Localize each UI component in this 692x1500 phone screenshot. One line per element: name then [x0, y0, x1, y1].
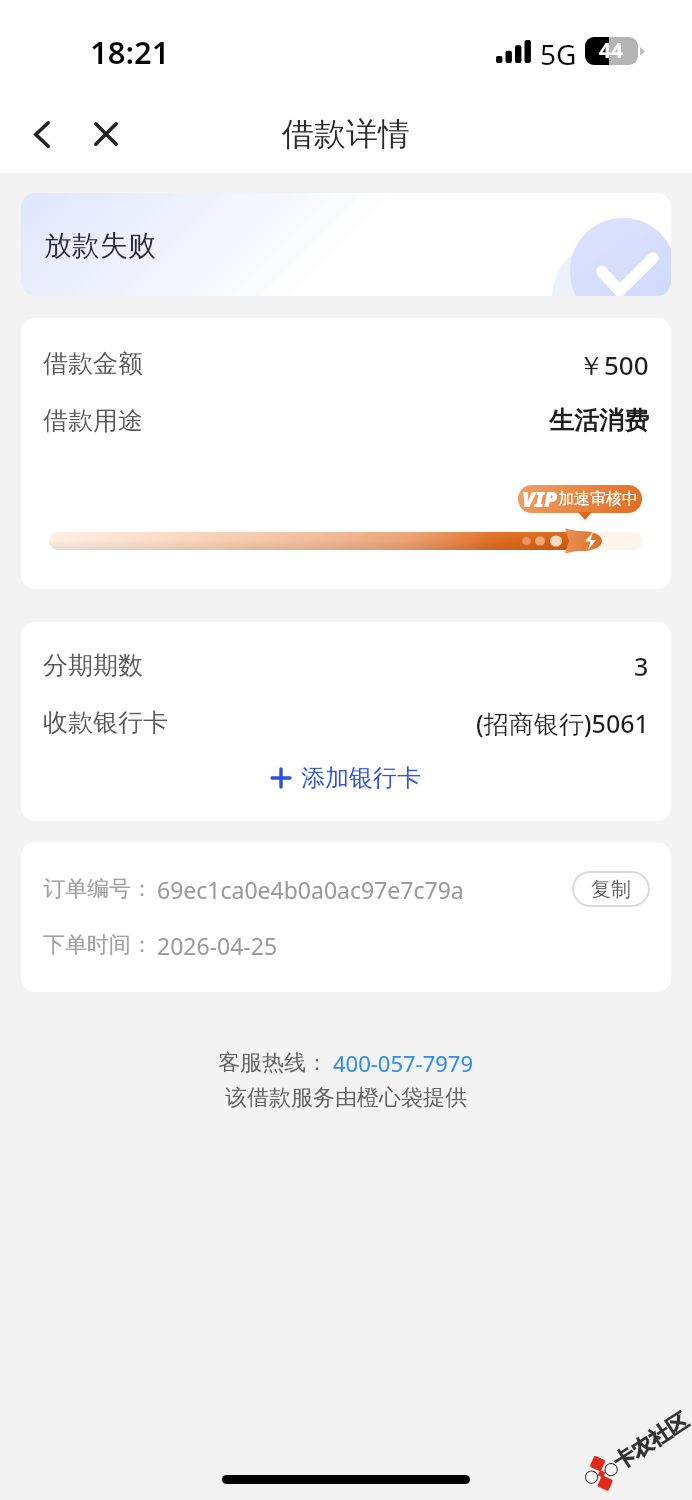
staticText: 借款用途 [43, 405, 143, 436]
staticText: 69ec1ca0e4b0a0ac97e7c79a [157, 874, 464, 905]
staticText: 复制 [591, 877, 631, 902]
staticText: 放款失败 [44, 228, 156, 263]
staticText: 收款银行卡 [43, 707, 168, 738]
staticText: 借款金额 [43, 348, 143, 379]
staticText: 18:21 [90, 31, 170, 73]
staticText: (招商银行)5061 [476, 706, 649, 738]
staticText: 生活消费 [549, 405, 649, 436]
staticText: 2026-04-25 [157, 930, 278, 961]
staticText: 该借款服务由橙心袋提供 [225, 1084, 467, 1114]
staticText: VIP [522, 485, 557, 513]
button[interactable]: 复制 [572, 871, 650, 907]
staticText: ￥500 [578, 347, 649, 379]
staticText: 3 [634, 649, 649, 681]
staticText: 加速审核中 [558, 489, 638, 509]
staticText: 添加银行卡 [301, 763, 421, 793]
button[interactable]: 添加银行卡 [21, 751, 671, 805]
staticText: 客服热线： [218, 1049, 328, 1077]
staticText: 5G [540, 35, 577, 73]
staticText: 借款详情 [282, 114, 410, 154]
button[interactable]: Back [9, 101, 75, 167]
staticText: 订单编号： [43, 875, 153, 903]
staticText: 卡农社区 [608, 1407, 692, 1475]
staticText: 44 [599, 37, 624, 64]
staticText: 下单时间： [43, 931, 153, 959]
button[interactable]: Close [73, 101, 139, 167]
staticText: 分期期数 [43, 650, 143, 681]
button[interactable]: 400-057-7979 [333, 1048, 474, 1078]
